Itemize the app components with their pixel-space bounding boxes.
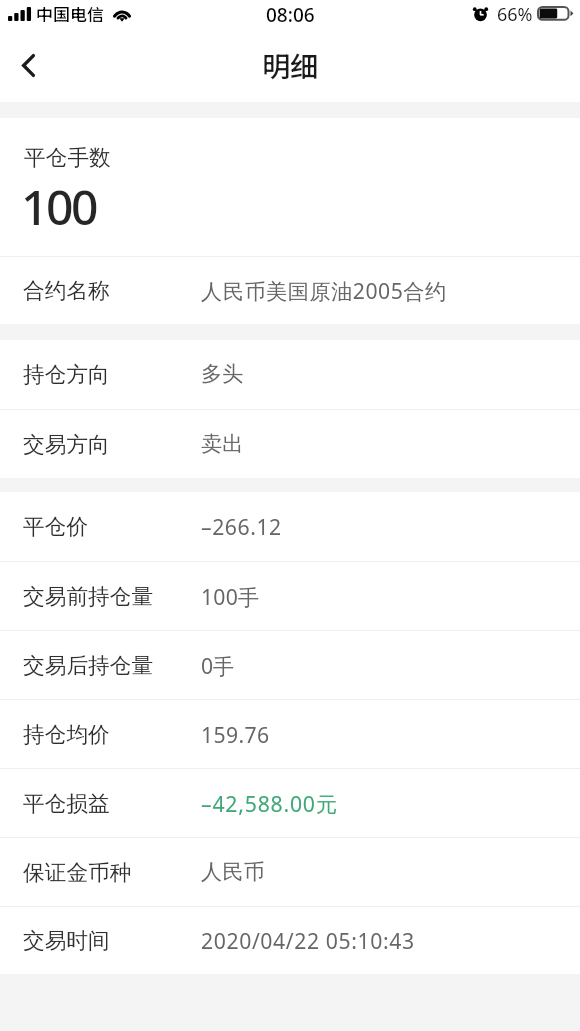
staticText: 平仓价 (23, 513, 201, 540)
staticText: 人民币美国原油2005合约 (201, 276, 447, 305)
staticText: 100手 (201, 582, 260, 611)
button[interactable]: 平仓价 (0, 492, 580, 562)
button[interactable]: 合约名称 (0, 257, 580, 324)
staticText: 08:06 (266, 2, 315, 28)
staticText: 交易后持仓量 (23, 652, 201, 679)
staticText: 保证金币种 (23, 859, 201, 886)
staticText: 平仓损益 (23, 790, 201, 817)
button[interactable]: 交易方向 (0, 410, 580, 478)
staticText: 交易时间 (23, 927, 201, 954)
staticText: 交易方向 (23, 431, 201, 458)
staticText: 100 (21, 174, 97, 239)
staticText: 交易前持仓量 (23, 583, 201, 610)
staticText: 卖出 (201, 431, 244, 458)
staticText: 人民币 (201, 859, 265, 886)
button[interactable]: 保证金币种 (0, 838, 580, 907)
staticText: –266.12 (201, 512, 282, 541)
staticText: 159.76 (201, 720, 270, 749)
staticText: 66% (497, 2, 533, 27)
staticText: 持仓均价 (23, 721, 201, 748)
staticText: 0手 (201, 651, 235, 680)
staticText: 明细 (262, 45, 319, 86)
staticText: 多头 (201, 361, 244, 388)
button[interactable]: 持仓均价 (0, 700, 580, 769)
button[interactable]: 交易后持仓量 (0, 631, 580, 700)
staticText: 2020/04/22 05:10:43 (201, 926, 415, 955)
staticText: –42,588.00元 (201, 789, 338, 818)
staticText: 中国电信 (36, 1, 104, 26)
button[interactable]: 平仓手数 (0, 118, 580, 256)
button[interactable]: 持仓方向 (0, 340, 580, 410)
button[interactable]: 交易前持仓量 (0, 562, 580, 631)
button[interactable]: Back (0, 41, 56, 97)
staticText: 平仓手数 (24, 144, 111, 171)
button[interactable]: 平仓损益 (0, 769, 580, 838)
button[interactable]: 交易时间 (0, 907, 580, 974)
staticText: 合约名称 (23, 277, 201, 304)
staticText: 持仓方向 (23, 361, 201, 388)
